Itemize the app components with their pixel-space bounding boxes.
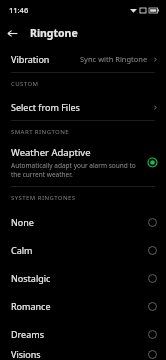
staticText: SYSTEM RINGTONES [11, 194, 76, 202]
staticText: Dreams [11, 328, 44, 340]
button[interactable]: Weather Adaptive [0, 142, 166, 186]
button[interactable]: Romance [0, 292, 166, 320]
staticText: CUSTOM [11, 80, 39, 88]
staticText: None [11, 216, 34, 228]
staticText: Vibration [11, 53, 50, 65]
staticText: SMART RINGTONE [11, 128, 69, 136]
staticText: 11:46 [9, 5, 29, 15]
button[interactable]: Back [0, 21, 24, 45]
button[interactable]: Calm [0, 236, 166, 264]
other: Open [152, 104, 159, 111]
staticText: Automatically adapt your alarm sound to … [11, 161, 142, 179]
staticText: Romance [11, 300, 51, 312]
button[interactable]: Vibration [0, 46, 166, 72]
staticText: Calm [11, 244, 33, 256]
staticText: Sync with Ringtone [80, 54, 148, 64]
button[interactable]: Dreams [0, 320, 166, 348]
button[interactable]: Nostalgic [0, 264, 166, 292]
staticText: Ringtone [30, 26, 78, 40]
staticText: Nostalgic [11, 272, 51, 284]
staticText: Visions [11, 348, 41, 360]
staticText: Select from Files [11, 101, 80, 113]
other: Open [152, 56, 159, 63]
button[interactable]: None [0, 208, 166, 236]
button[interactable]: Visions [0, 348, 166, 360]
staticText: Weather Adaptive [11, 146, 91, 159]
button[interactable]: Select from Files [0, 94, 166, 120]
